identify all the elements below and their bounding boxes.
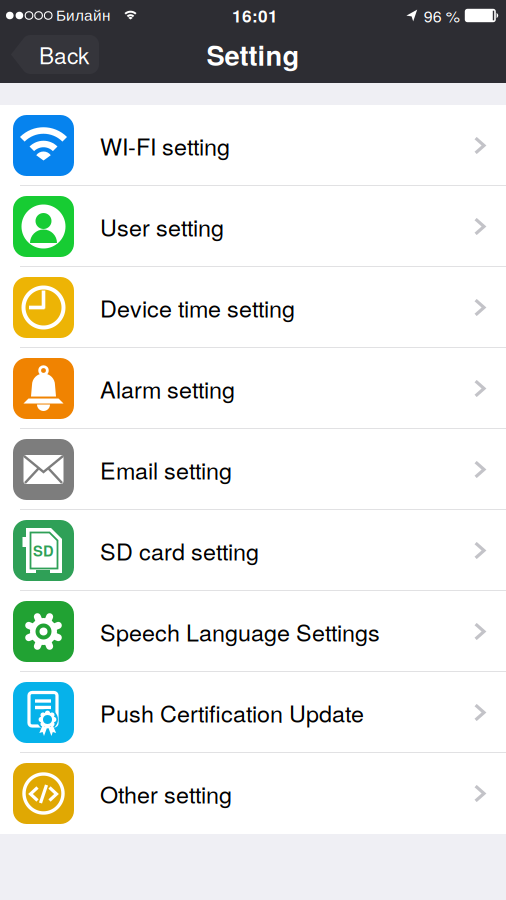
staticText: Other setting [100,777,232,810]
staticText: Push Certification Update [100,696,364,729]
staticText: WI-FI setting [100,129,230,162]
button[interactable]: Push Certification Update [0,672,506,753]
staticText: SD card setting [100,534,259,567]
staticText: Alarm setting [100,372,235,405]
staticText: SD [33,540,54,561]
staticText: User setting [100,210,224,243]
button[interactable]: Other setting [0,753,506,834]
button[interactable]: User setting [0,186,506,267]
staticText: Back [39,38,89,71]
button[interactable]: Email setting [0,429,506,510]
staticText: Билайн [56,7,110,24]
staticText: Setting [206,35,299,74]
staticText: Device time setting [100,291,295,324]
staticText: Speech Language Settings [100,615,380,648]
button[interactable]: Alarm setting [0,348,506,429]
button[interactable]: WI-FI setting [0,105,506,186]
button[interactable]: Speech Language Settings [0,591,506,672]
button[interactable]: Back [11,35,99,74]
staticText: 16:01 [232,3,278,28]
button[interactable]: Device time setting [0,267,506,348]
staticText: Email setting [100,453,232,486]
button[interactable]: SD [0,510,506,591]
staticText: 96 % [424,4,460,27]
